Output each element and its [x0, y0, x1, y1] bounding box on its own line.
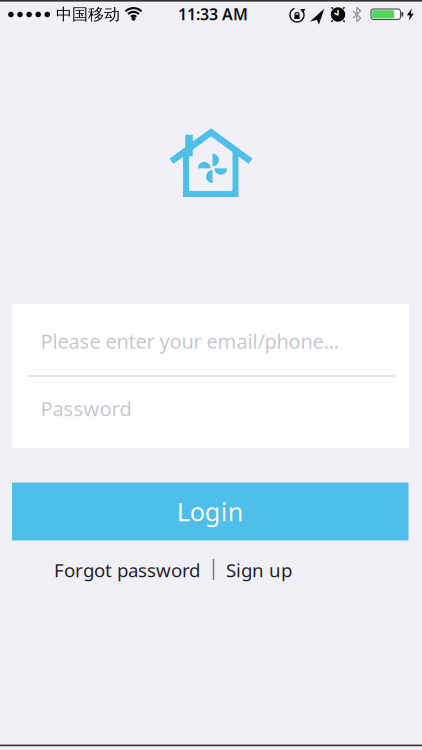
button[interactable]: Please enter your email/phone... [12, 304, 409, 376]
staticText: Please enter your email/phone... [40, 328, 338, 354]
button[interactable]: Forgot password [54, 558, 200, 582]
staticText: Forgot password [54, 558, 200, 582]
button[interactable]: Login [12, 482, 408, 540]
button[interactable]: Password [12, 376, 409, 448]
button[interactable]: Sign up [226, 558, 292, 582]
staticText: 中国移动 [56, 5, 120, 24]
staticText: Password [40, 395, 131, 422]
staticText: Login [177, 495, 244, 528]
staticText: 11:33 AM [178, 3, 248, 25]
staticText: Sign up [226, 558, 292, 582]
